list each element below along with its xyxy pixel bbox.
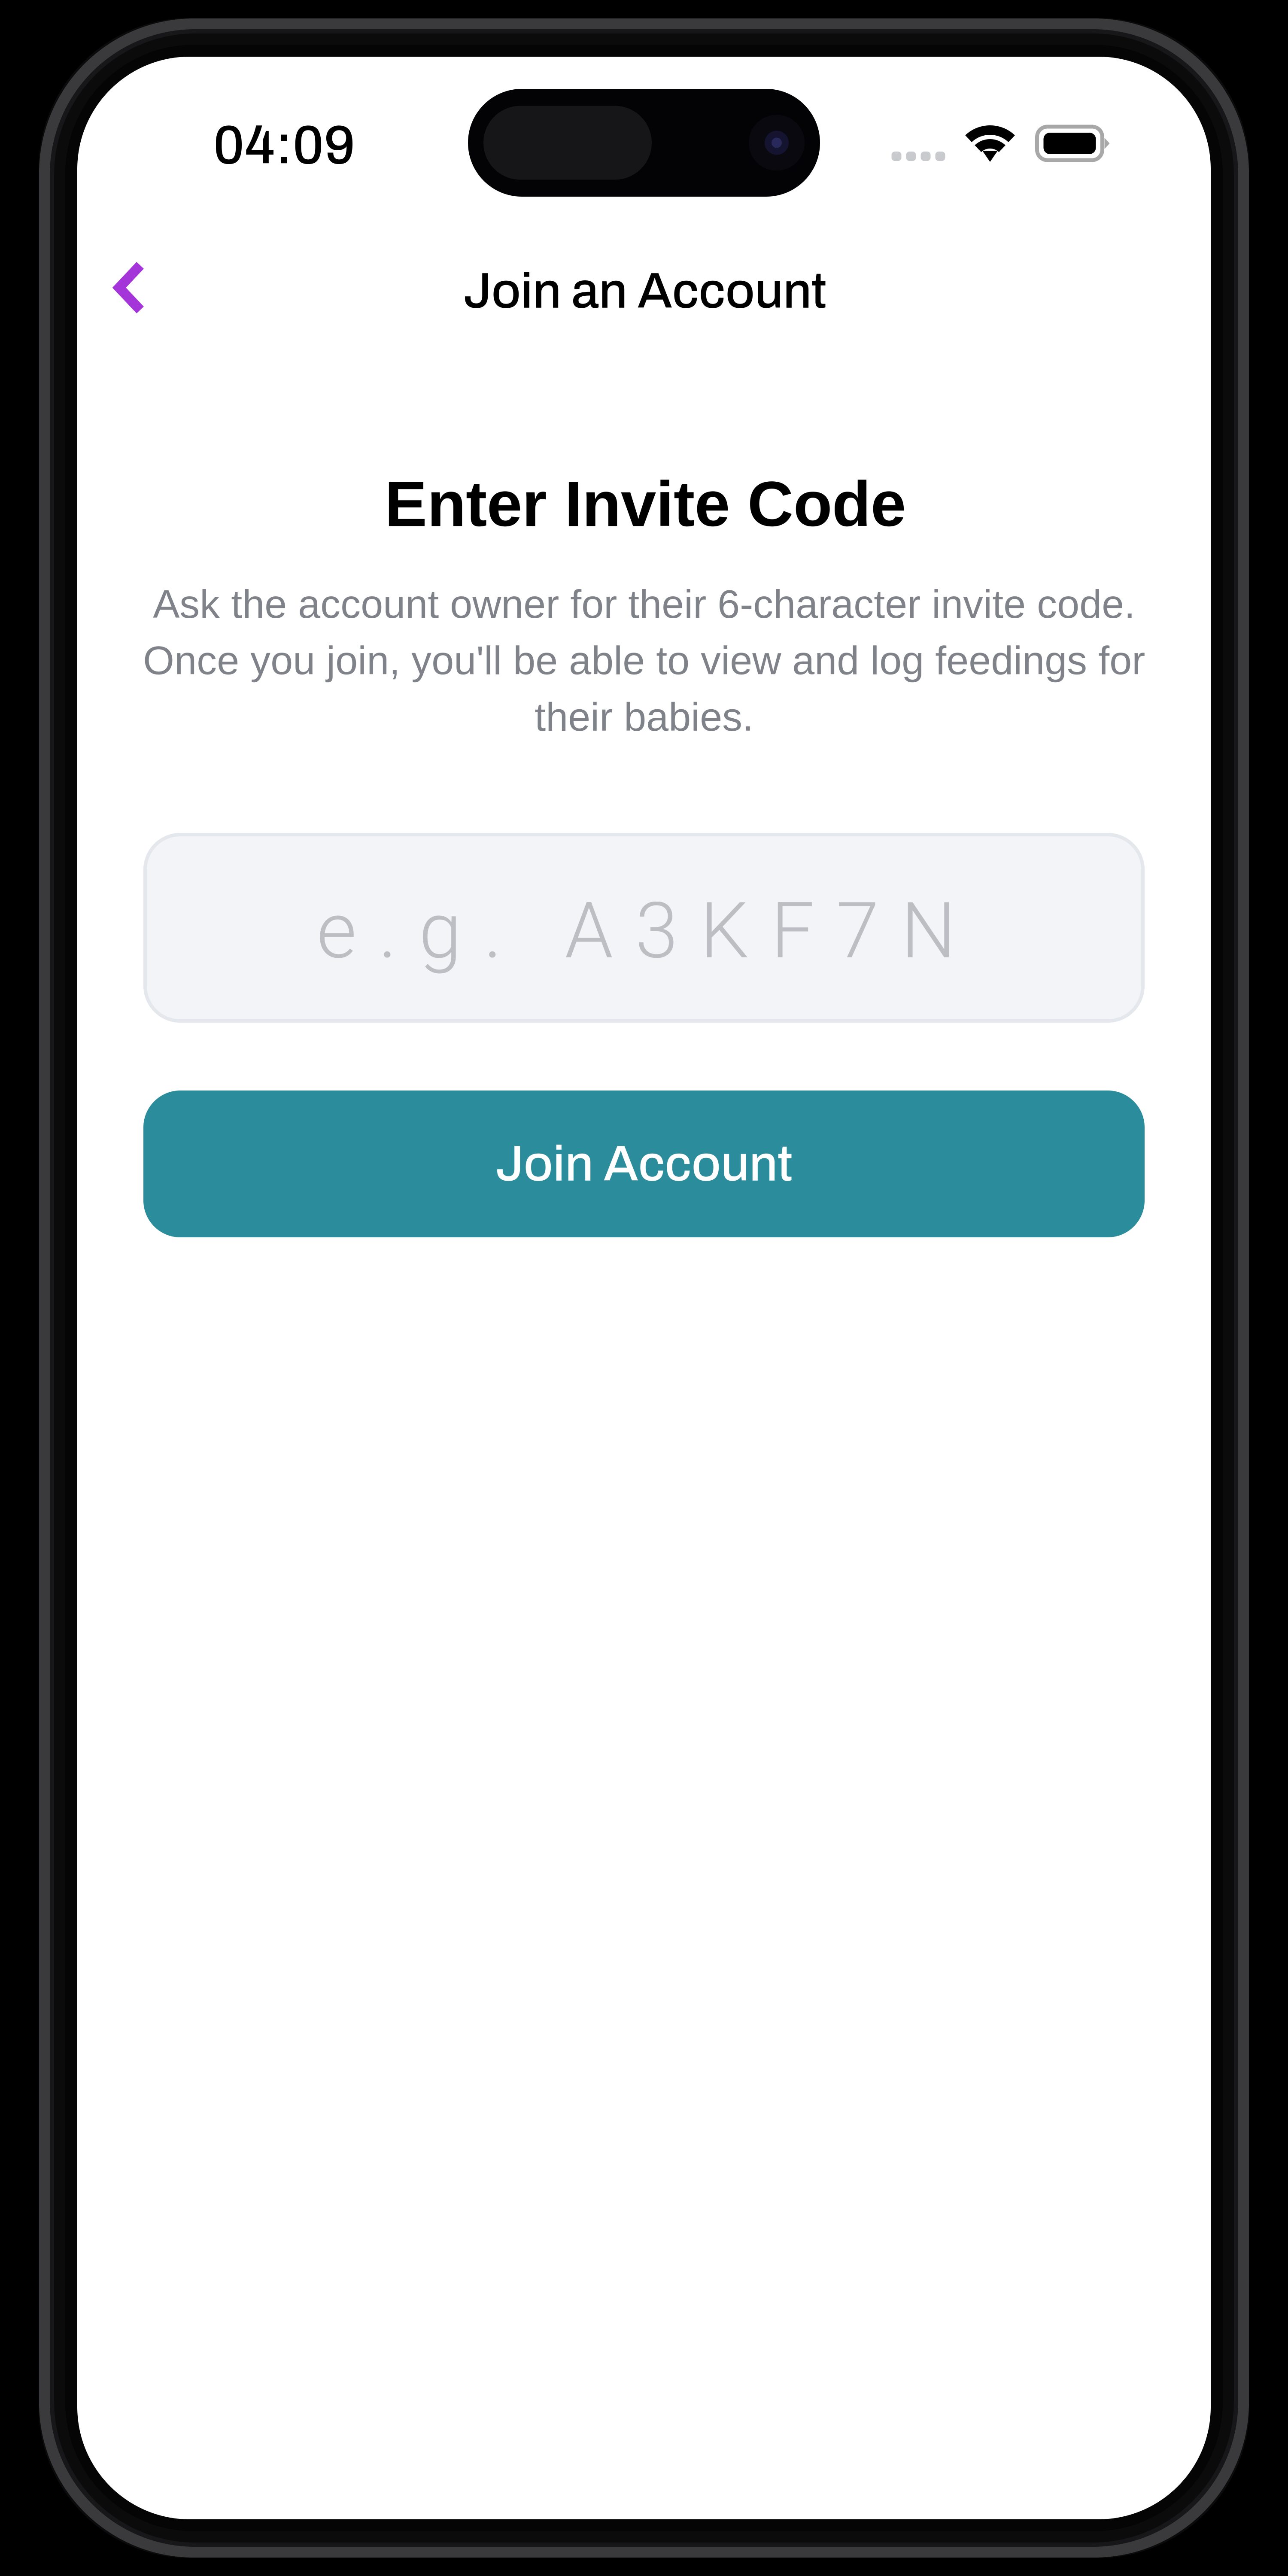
staticText: e.g. A3KF7N <box>317 885 956 976</box>
button[interactable]: Back <box>89 247 170 328</box>
staticText: 04:09 <box>213 116 355 175</box>
button[interactable]: Join Account <box>143 1091 1145 1237</box>
staticText: Join an Account <box>463 264 826 318</box>
staticText: Enter Invite Code <box>385 469 906 540</box>
staticText: Join Account <box>495 1137 793 1191</box>
staticText: Ask the account owner for their 6-charac… <box>143 582 1145 739</box>
